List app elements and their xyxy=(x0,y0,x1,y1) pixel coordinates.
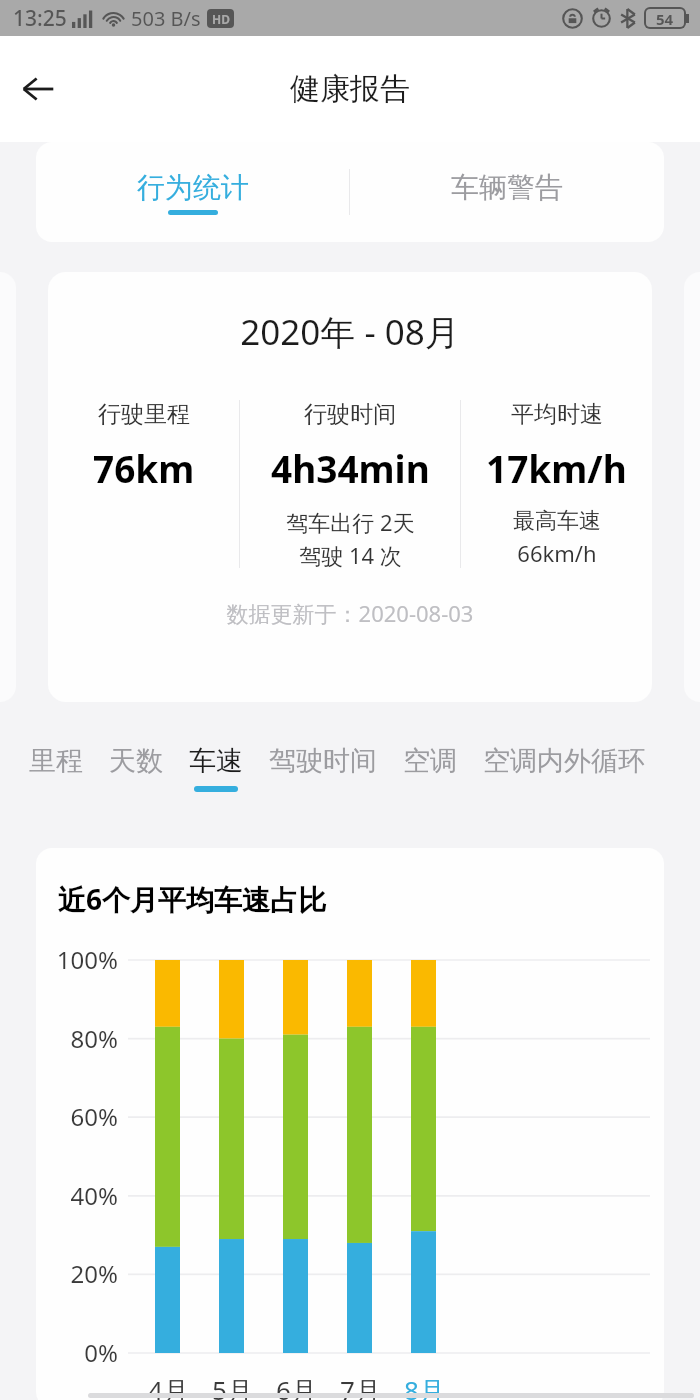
staticText: 最高车速 xyxy=(513,507,601,535)
staticText: 54 xyxy=(656,9,674,27)
staticText: 行驶里程 xyxy=(98,400,190,429)
staticText: 4月 xyxy=(148,1372,189,1400)
staticText: 66km/h xyxy=(517,538,597,568)
staticText: 0% xyxy=(84,1336,118,1369)
button[interactable]: 空调内外循环 xyxy=(470,744,658,786)
staticText: 2020年 - 08月 xyxy=(48,308,652,356)
staticText: 近6个月平均车速占比 xyxy=(58,880,327,918)
staticText: 5月 xyxy=(212,1372,253,1400)
staticText: 平均时速 xyxy=(511,400,603,429)
staticText: 天数 xyxy=(109,744,163,778)
staticText: 13:25 xyxy=(13,4,67,33)
staticText: 健康报告 xyxy=(290,70,410,108)
staticText: 里程 xyxy=(29,744,83,778)
button[interactable]: 驾驶时间 xyxy=(256,744,390,786)
button[interactable]: 车辆警告 xyxy=(350,142,664,242)
button[interactable]: 车速 xyxy=(176,744,256,792)
staticText: 40% xyxy=(70,1179,118,1212)
button[interactable]: 行为统计 xyxy=(36,142,349,242)
staticText: 驾驶时间 xyxy=(269,744,377,778)
button[interactable]: Back xyxy=(6,57,70,121)
staticText: 4h34min xyxy=(271,443,430,493)
staticText: 60% xyxy=(70,1100,118,1133)
staticText: 空调内外循环 xyxy=(483,744,645,778)
button[interactable]: 2020年 - 08月 xyxy=(48,272,652,702)
button[interactable]: 空调 xyxy=(390,744,470,786)
button[interactable]: 天数 xyxy=(96,744,176,786)
staticText: 17km/h xyxy=(486,443,627,493)
staticText: 车速 xyxy=(189,744,243,778)
staticText: 车辆警告 xyxy=(451,170,563,205)
staticText: 76km xyxy=(93,443,195,493)
staticText: 80% xyxy=(70,1022,118,1055)
staticText: 空调 xyxy=(403,744,457,778)
staticText: 100% xyxy=(56,943,118,976)
staticText: 驾车出行 2天 xyxy=(286,507,415,537)
staticText: 7月 xyxy=(340,1372,381,1400)
staticText: 行为统计 xyxy=(137,170,249,205)
staticText: HD xyxy=(212,11,230,27)
staticText: 行驶时间 xyxy=(304,400,396,429)
staticText: 驾驶 14 次 xyxy=(299,540,402,568)
staticText: 6月 xyxy=(276,1372,317,1400)
staticText: 8月 xyxy=(404,1372,445,1400)
staticText: 数据更新于：2020-08-03 xyxy=(48,598,652,628)
staticText: 503 B/s xyxy=(131,5,201,32)
button[interactable]: 里程 xyxy=(16,744,96,786)
staticText: 20% xyxy=(70,1257,118,1290)
